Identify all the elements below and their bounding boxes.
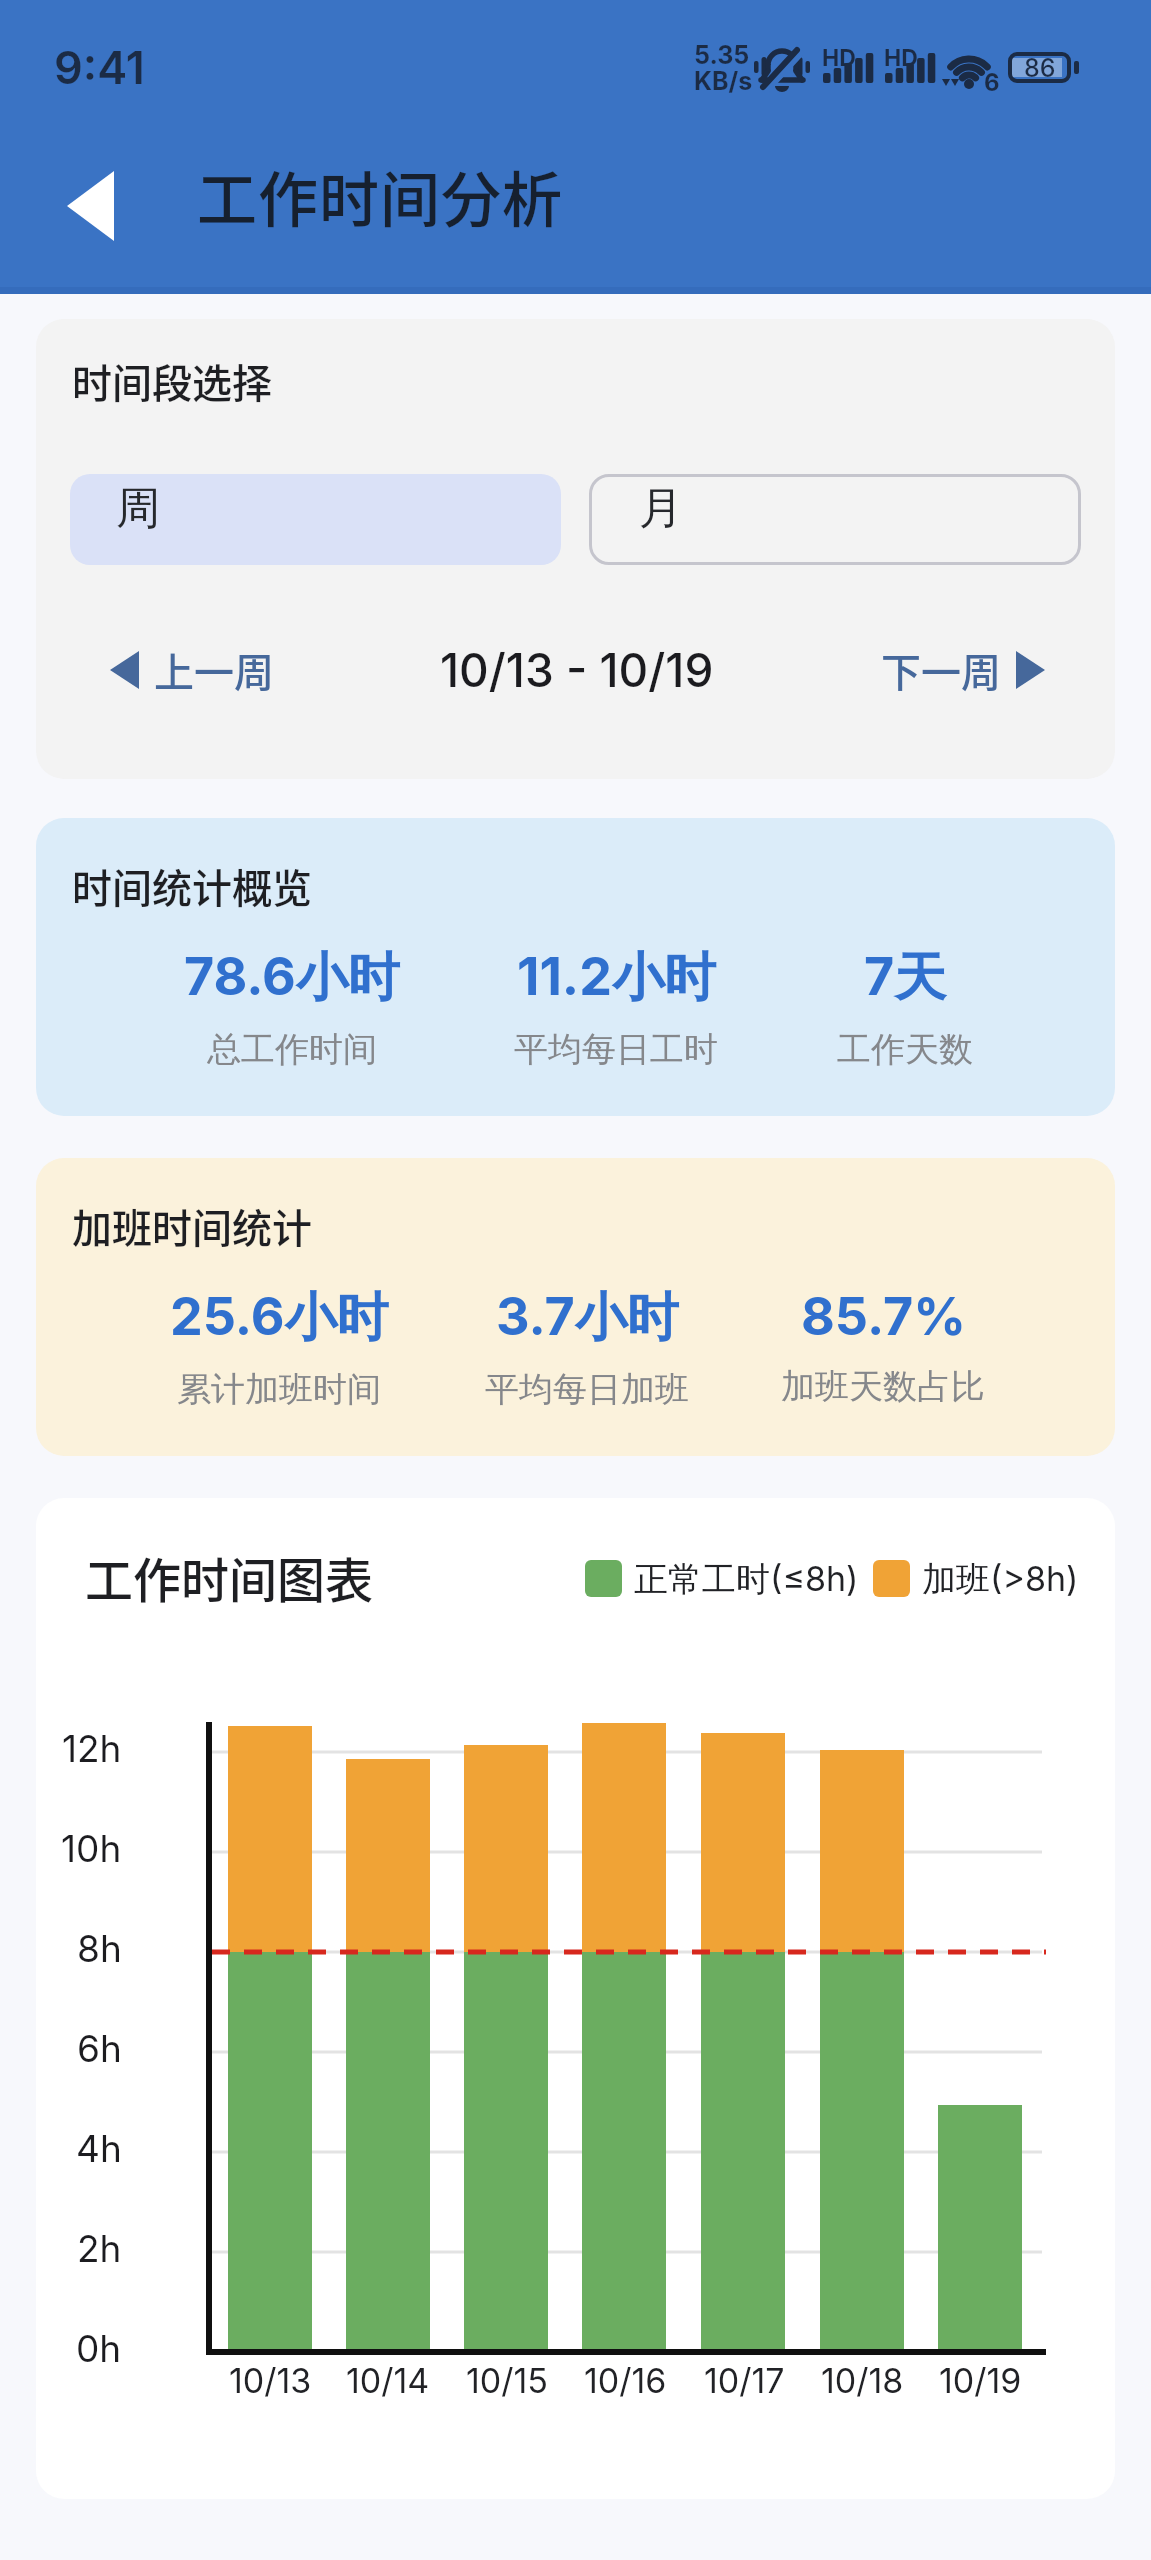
staticText: 12h [62, 1726, 122, 1771]
staticText: 总工作时间 [207, 1028, 377, 1071]
staticText: 月 [639, 481, 683, 536]
button[interactable]: 周 [70, 474, 561, 565]
staticText: HD [884, 44, 918, 72]
staticText: HD [822, 44, 856, 72]
staticText: 6 [984, 68, 1000, 97]
staticText: 25.6小时 [170, 1285, 389, 1351]
button[interactable]: 下一周 [881, 641, 1045, 699]
staticText: 85.7% [801, 1285, 966, 1348]
staticText: 周 [116, 481, 160, 536]
staticText: 时间统计概览 [72, 857, 312, 915]
staticText: 累计加班时间 [177, 1368, 381, 1411]
staticText: 8h [77, 1926, 122, 1971]
staticText: 上一周 [154, 641, 274, 699]
staticText: 10/19 [939, 2360, 1022, 2401]
staticText: 9:41 [54, 40, 145, 94]
staticText: 时间段选择 [72, 352, 272, 410]
button[interactable]: 上一周 [110, 641, 274, 699]
staticText: 10/13 - 10/19 [440, 642, 714, 698]
staticText: KB/s [694, 66, 753, 96]
staticText: 78.6小时 [184, 945, 400, 1011]
staticText: 10/16 [584, 2360, 667, 2401]
staticText: 86 [1024, 53, 1056, 83]
staticText: 工作时间图表 [85, 1542, 374, 1612]
staticText: 加班时间统计 [72, 1197, 312, 1255]
staticText: 平均每日工时 [514, 1028, 718, 1071]
staticText: 加班天数占比 [781, 1365, 985, 1408]
staticText: 10/15 [466, 2360, 549, 2401]
staticText: 10h [61, 1826, 122, 1871]
button[interactable] [62, 168, 118, 244]
staticText: 4h [76, 2126, 122, 2171]
staticText: 10/18 [821, 2360, 904, 2401]
staticText: 正常工时(≤8h) [634, 1558, 859, 1601]
staticText: 工作时间分析 [197, 152, 563, 239]
staticText: 工作天数 [837, 1028, 973, 1071]
staticText: 下一周 [881, 641, 1001, 699]
staticText: 10/14 [346, 2360, 430, 2401]
staticText: 5.35 [694, 40, 750, 70]
staticText: 3.7小时 [496, 1285, 679, 1351]
staticText: 加班(>8h) [922, 1558, 1079, 1601]
staticText: 11.2小时 [517, 945, 716, 1011]
staticText: 平均每日加班 [485, 1368, 689, 1411]
staticText: 0h [76, 2326, 122, 2371]
staticText: 2h [77, 2226, 122, 2271]
button[interactable]: 月 [589, 474, 1081, 565]
staticText: 6h [77, 2026, 122, 2071]
staticText: 10/13 [229, 2360, 312, 2401]
staticText: 10/17 [704, 2360, 785, 2401]
staticText: 7天 [864, 945, 947, 1011]
